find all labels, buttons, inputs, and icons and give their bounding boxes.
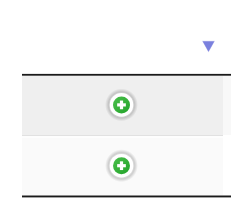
button[interactable]: Show menu bbox=[200, 39, 217, 54]
button[interactable]: Add entry, first row bbox=[22, 76, 231, 135]
button[interactable]: Add entry, second row bbox=[22, 136, 231, 195]
